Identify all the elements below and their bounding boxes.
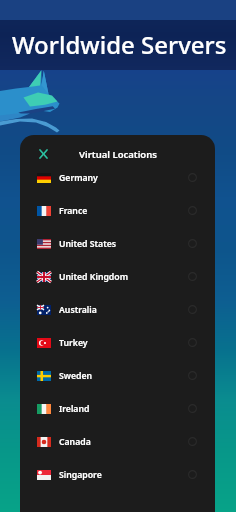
staticText: Singapore [59,469,188,481]
button[interactable]: Turkey [20,326,215,359]
staticText: Canada [59,436,188,448]
button[interactable]: United Kingdom [20,260,215,293]
staticText: Turkey [59,337,188,349]
button[interactable]: Germany [20,161,215,194]
button[interactable]: Singapore [20,458,215,491]
button[interactable]: Close [33,144,53,164]
staticText: Virtual Locations [79,148,157,161]
staticText: Worldwide Servers [12,28,227,61]
staticText: Sweden [59,370,188,382]
button[interactable]: Canada [20,425,215,458]
staticText: Ireland [59,403,188,415]
button[interactable]: Australia [20,293,215,326]
button[interactable]: United States [20,227,215,260]
button[interactable]: Sweden [20,359,215,392]
button[interactable]: France [20,194,215,227]
staticText: Australia [59,304,188,316]
staticText: United States [59,238,188,250]
staticText: United Kingdom [59,271,188,283]
staticText: France [59,205,188,217]
staticText: Germany [59,172,188,184]
button[interactable]: Ireland [20,392,215,425]
